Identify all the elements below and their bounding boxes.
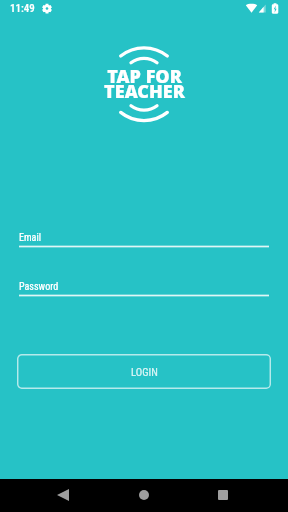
staticText: TAP FOR [107, 64, 182, 89]
staticText: LOGIN [131, 366, 158, 379]
button[interactable]: Home [132, 483, 156, 507]
button[interactable]: LOGIN [17, 354, 271, 389]
button[interactable]: Back [51, 483, 75, 507]
staticText: TEACHER [104, 79, 185, 104]
staticText: 11:49 [10, 2, 35, 15]
button[interactable]: Recent apps [211, 483, 235, 507]
button[interactable]: Email [19, 232, 269, 248]
staticText: Password [19, 281, 59, 293]
staticText: Email [19, 232, 42, 244]
button[interactable]: Password [19, 281, 269, 297]
